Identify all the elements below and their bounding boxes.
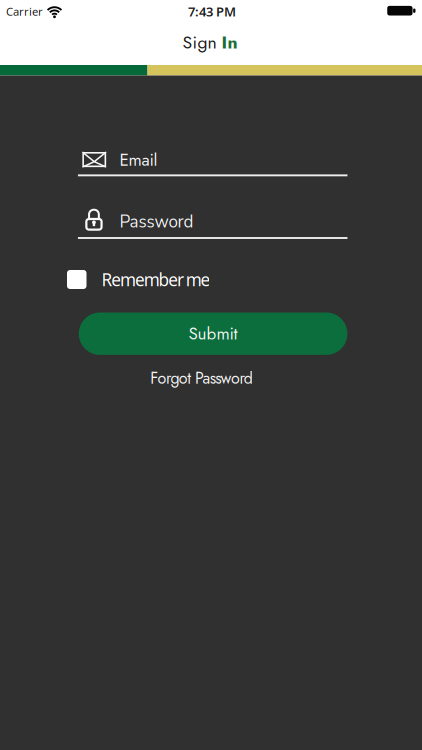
button[interactable]: Forgot Password	[150, 367, 253, 390]
staticText: Submit	[189, 321, 238, 346]
staticText: 7:43 PM	[188, 3, 236, 20]
button[interactable]: Submit	[79, 312, 347, 355]
staticText: Forgot Password	[150, 367, 253, 390]
button[interactable]: Email	[78, 146, 347, 177]
staticText: Email	[119, 148, 157, 172]
staticText: Remember me	[101, 268, 210, 291]
button[interactable]: Password	[78, 200, 347, 240]
staticText: Carrier	[6, 4, 43, 19]
button[interactable]: Remember me	[67, 268, 267, 290]
staticText: Sign	[182, 30, 221, 55]
staticText: Password	[119, 210, 193, 233]
staticText: In	[221, 30, 237, 55]
